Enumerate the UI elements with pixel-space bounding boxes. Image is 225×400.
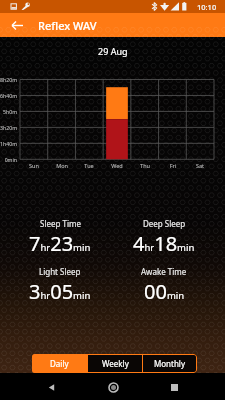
staticText: Awake Time bbox=[141, 266, 187, 277]
staticText: 6h40m bbox=[0, 92, 17, 99]
staticText: Daily bbox=[50, 358, 69, 369]
staticText: Thu bbox=[131, 162, 159, 169]
button[interactable]: Back bbox=[9, 17, 26, 34]
staticText: Sleep Time bbox=[40, 218, 81, 229]
staticText: 00min bbox=[144, 278, 185, 305]
staticText: Reflex WAV bbox=[38, 18, 97, 33]
staticText: Tue bbox=[75, 162, 103, 169]
staticText: 3hr05min bbox=[29, 278, 91, 305]
staticText: 29 Aug bbox=[98, 45, 128, 57]
staticText: Sat bbox=[186, 162, 214, 169]
staticText: 3h20m bbox=[0, 124, 17, 131]
staticText: Deep Sleep bbox=[143, 218, 186, 229]
button[interactable]: Home bbox=[103, 377, 123, 397]
staticText: Weekly bbox=[102, 358, 129, 369]
staticText: 8h20m bbox=[0, 76, 17, 83]
staticText: 0min bbox=[0, 156, 17, 163]
staticText: Light Sleep bbox=[39, 266, 81, 277]
button[interactable]: Weekly bbox=[88, 354, 142, 373]
staticText: 10:10 bbox=[197, 2, 217, 12]
staticText: 4hr18min bbox=[133, 230, 195, 257]
staticText: Monthly bbox=[154, 358, 186, 369]
staticText: Wed bbox=[103, 162, 131, 169]
staticText: Sun bbox=[20, 162, 48, 169]
staticText: Fri bbox=[159, 162, 187, 169]
button[interactable]: Monthly bbox=[143, 354, 197, 373]
button[interactable]: Back bbox=[41, 377, 61, 397]
button[interactable]: Recents bbox=[164, 377, 184, 397]
staticText: 7hr23min bbox=[29, 230, 91, 257]
staticText: Mon bbox=[48, 162, 76, 169]
button[interactable]: Daily bbox=[32, 354, 87, 373]
staticText: 1h40m bbox=[0, 140, 17, 147]
staticText: 5h0m bbox=[0, 108, 17, 115]
